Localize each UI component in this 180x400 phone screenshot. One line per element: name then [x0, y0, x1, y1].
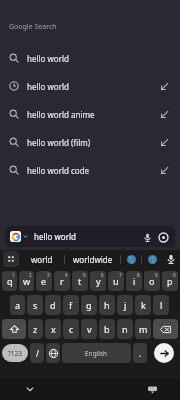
- button[interactable]: p: [162, 271, 178, 291]
- staticText: n: [122, 323, 128, 335]
- button[interactable]: .: [133, 343, 147, 363]
- button[interactable]: c: [63, 319, 79, 339]
- button[interactable]: Switch keyboard: [144, 381, 160, 397]
- button[interactable]: d: [45, 295, 61, 315]
- staticText: r: [60, 275, 64, 287]
- button[interactable]: Search: [154, 343, 174, 363]
- button[interactable]: Change language: [46, 343, 60, 363]
- staticText: g: [86, 299, 92, 311]
- button[interactable]: i: [126, 271, 142, 291]
- button[interactable]: hello world: [0, 44, 180, 72]
- staticText: hello world: [34, 231, 140, 242]
- staticText: .: [139, 348, 142, 359]
- button[interactable]: Insert suggestion: [157, 107, 171, 121]
- staticText: p: [167, 275, 173, 287]
- button[interactable]: e: [36, 271, 52, 291]
- button[interactable]: hello world code: [0, 156, 180, 184]
- staticText: s: [33, 299, 38, 311]
- staticText: d: [50, 299, 56, 311]
- button[interactable]: Insert suggestion: [157, 79, 171, 93]
- staticText: c: [69, 323, 74, 335]
- staticText: /: [36, 348, 39, 359]
- staticText: 1: [12, 272, 15, 278]
- button[interactable]: w: [19, 271, 34, 291]
- staticText: 2: [29, 272, 32, 278]
- staticText: hello world anime: [27, 109, 157, 120]
- button[interactable]: Shift: [2, 319, 26, 339]
- staticText: Google Search: [9, 22, 57, 32]
- button[interactable]: Toolbar: [3, 251, 19, 267]
- button[interactable]: r: [54, 271, 70, 291]
- staticText: worldwide: [73, 254, 113, 265]
- button[interactable]: Backspace: [153, 319, 178, 339]
- button[interactable]: t: [72, 271, 88, 291]
- button[interactable]: m: [135, 319, 151, 339]
- button[interactable]: s: [27, 295, 43, 315]
- button[interactable]: u: [108, 271, 124, 291]
- button[interactable]: l: [153, 295, 169, 315]
- button[interactable]: hello world: [5, 226, 175, 247]
- staticText: 8: [137, 272, 140, 278]
- button[interactable]: ?123: [2, 344, 28, 362]
- button[interactable]: a: [10, 295, 25, 315]
- staticText: 7: [119, 272, 122, 278]
- button[interactable]: Insert suggestion: [157, 135, 171, 149]
- button[interactable]: j: [117, 295, 133, 315]
- staticText: h: [104, 299, 110, 311]
- staticText: 3: [47, 272, 50, 278]
- staticText: ?123: [8, 349, 22, 358]
- button[interactable]: hello world anime: [0, 100, 180, 128]
- button[interactable]: Google Lens: [156, 230, 170, 244]
- staticText: x: [51, 323, 56, 335]
- staticText: e: [41, 275, 47, 287]
- staticText: w: [23, 275, 31, 287]
- button[interactable]: English: [62, 343, 131, 363]
- button[interactable]: n: [117, 319, 133, 339]
- staticText: y: [96, 275, 101, 287]
- button[interactable]: h: [99, 295, 115, 315]
- staticText: 4: [65, 272, 68, 278]
- button[interactable]: [121, 250, 141, 268]
- button[interactable]: worldwide: [65, 250, 120, 268]
- button[interactable]: hello world (film): [0, 128, 180, 156]
- staticText: 5: [83, 272, 86, 278]
- button[interactable]: f: [63, 295, 79, 315]
- button[interactable]: Insert suggestion: [157, 163, 171, 177]
- staticText: hello world code: [27, 165, 157, 176]
- button[interactable]: hello world: [0, 72, 180, 100]
- staticText: z: [33, 323, 38, 335]
- staticText: a: [15, 299, 21, 311]
- staticText: m: [139, 323, 148, 335]
- button[interactable]: [142, 250, 162, 268]
- button[interactable]: z: [28, 319, 43, 339]
- button[interactable]: world: [19, 250, 64, 268]
- button[interactable]: /: [30, 343, 44, 363]
- staticText: l: [160, 299, 163, 311]
- staticText: j: [124, 299, 127, 311]
- staticText: 9: [155, 272, 158, 278]
- button[interactable]: b: [99, 319, 115, 339]
- staticText: b: [104, 323, 110, 335]
- button[interactable]: o: [144, 271, 160, 291]
- button[interactable]: x: [45, 319, 61, 339]
- staticText: 0: [173, 272, 176, 278]
- button[interactable]: Voice search: [140, 230, 154, 244]
- staticText: f: [69, 299, 73, 311]
- staticText: 6: [101, 272, 104, 278]
- button[interactable]: v: [81, 319, 97, 339]
- button[interactable]: Voice input: [162, 250, 180, 268]
- button[interactable]: k: [135, 295, 151, 315]
- button[interactable]: g: [81, 295, 97, 315]
- staticText: hello world: [27, 81, 157, 92]
- button[interactable]: Hide keyboard: [22, 381, 38, 397]
- staticText: i: [133, 275, 136, 287]
- staticText: t: [78, 275, 82, 287]
- staticText: o: [149, 275, 155, 287]
- staticText: hello world: [27, 53, 171, 64]
- staticText: world: [31, 254, 53, 265]
- button[interactable]: q: [2, 271, 17, 291]
- staticText: q: [7, 275, 13, 287]
- staticText: v: [87, 323, 92, 335]
- button[interactable]: y: [90, 271, 106, 291]
- staticText: hello world (film): [27, 137, 157, 148]
